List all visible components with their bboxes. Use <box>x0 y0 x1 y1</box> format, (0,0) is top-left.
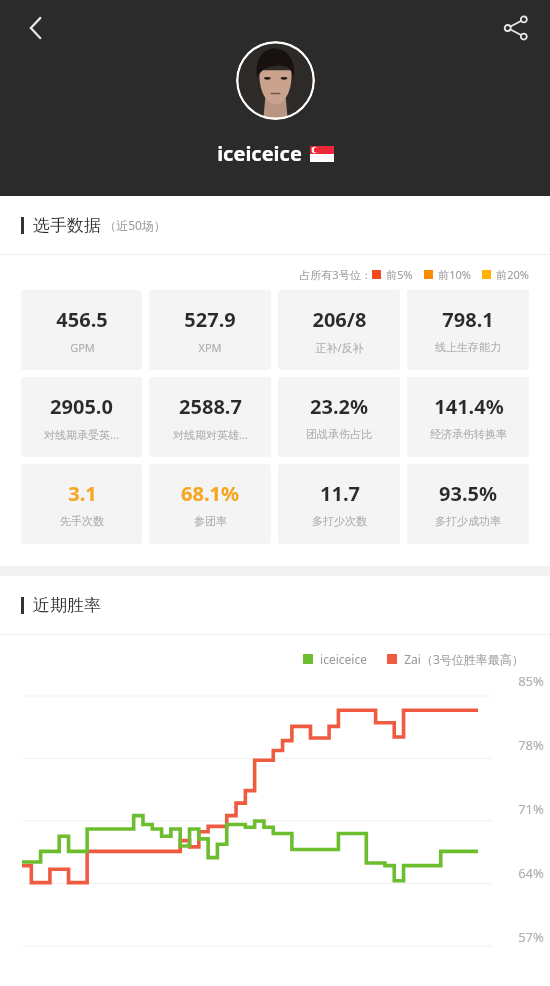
staticText: （近50场） <box>104 217 166 233</box>
staticText: XPM <box>198 340 222 355</box>
staticText: 2905.0 <box>50 393 113 420</box>
staticText: 先手次数 <box>60 514 104 528</box>
button[interactable]: 93.5% <box>407 464 529 544</box>
button[interactable]: 798.1 <box>407 290 529 370</box>
button[interactable]: 206/8 <box>278 290 400 370</box>
staticText: 近期胜率 <box>33 595 101 616</box>
staticText: 3.1 <box>68 480 97 507</box>
staticText: 多打少次数 <box>312 514 367 528</box>
staticText: 前20% <box>496 267 529 282</box>
staticText: 68.1% <box>181 480 239 507</box>
button[interactable]: 527.9 <box>149 290 271 370</box>
button[interactable]: 23.2% <box>278 377 400 457</box>
staticText: 前5% <box>386 267 413 282</box>
staticText: 57% <box>518 928 544 946</box>
button[interactable]: Back <box>8 0 64 56</box>
staticText: 78% <box>518 736 544 754</box>
staticText: 23.2% <box>310 393 368 420</box>
staticText: 对线期对英雄... <box>173 427 248 442</box>
staticText: 选手数据 <box>33 215 101 236</box>
staticText: 64% <box>518 864 544 882</box>
staticText: 参团率 <box>194 514 227 528</box>
button[interactable]: 11.7 <box>278 464 400 544</box>
staticText: 占所有3号位： <box>299 267 372 282</box>
button[interactable]: 68.1% <box>149 464 271 544</box>
staticText: 71% <box>518 800 544 818</box>
staticText: 前10% <box>438 267 471 282</box>
button[interactable]: 456.5 <box>21 290 142 370</box>
staticText: 团战承伤占比 <box>306 427 372 441</box>
staticText: iceiceice <box>217 140 302 167</box>
staticText: 798.1 <box>442 306 494 333</box>
staticText: GPM <box>70 340 95 355</box>
staticText: 206/8 <box>312 306 367 333</box>
staticText: 527.9 <box>184 306 236 333</box>
button[interactable]: Profile photo <box>236 41 315 120</box>
staticText: iceiceice <box>320 651 367 667</box>
staticText: Zai（3号位胜率最高） <box>404 651 524 667</box>
staticText: 经济承伤转换率 <box>430 427 507 441</box>
button[interactable]: 141.4% <box>407 377 529 457</box>
button[interactable]: 3.1 <box>21 464 142 544</box>
staticText: 正补/反补 <box>315 340 364 355</box>
staticText: 456.5 <box>56 306 108 333</box>
staticText: 线上生存能力 <box>435 340 501 354</box>
button[interactable]: 2588.7 <box>149 377 271 457</box>
staticText: 85% <box>518 672 544 690</box>
button[interactable]: 2905.0 <box>21 377 142 457</box>
button[interactable]: Share <box>488 0 544 56</box>
staticText: 对线期承受英... <box>44 427 119 442</box>
staticText: 2588.7 <box>179 393 242 420</box>
staticText: 141.4% <box>434 393 504 420</box>
staticText: 11.7 <box>320 480 360 507</box>
staticText: 93.5% <box>439 480 497 507</box>
staticText: 多打少成功率 <box>435 514 501 528</box>
